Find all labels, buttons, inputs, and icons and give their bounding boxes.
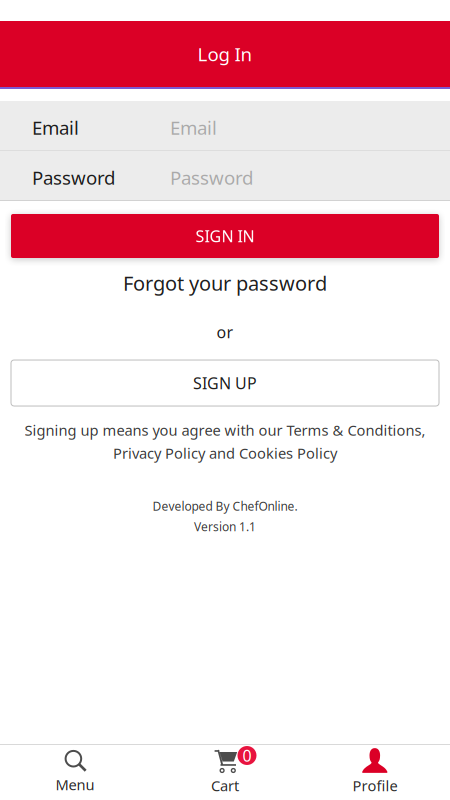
button[interactable]: 0 bbox=[150, 745, 300, 799]
staticText: 0 bbox=[242, 745, 251, 766]
staticText: Profile bbox=[352, 775, 397, 795]
staticText: Password bbox=[170, 165, 253, 190]
staticText: Log In bbox=[197, 41, 252, 67]
button[interactable]: SIGN IN bbox=[0, 214, 450, 258]
staticText: Menu bbox=[55, 774, 94, 794]
staticText: or bbox=[216, 321, 233, 343]
staticText: Version 1.1 bbox=[194, 518, 256, 535]
staticText: Signing up means you agree with our Term… bbox=[24, 420, 425, 440]
staticText: Cart bbox=[211, 775, 239, 795]
button[interactable]: Profile bbox=[300, 745, 450, 799]
staticText: Email bbox=[170, 115, 217, 140]
button[interactable]: Menu bbox=[0, 745, 150, 799]
staticText: Email bbox=[32, 115, 79, 140]
staticText: SIGN UP bbox=[193, 372, 257, 394]
staticText: Forgot your password bbox=[123, 269, 327, 297]
staticText: SIGN IN bbox=[195, 225, 254, 247]
staticText: Privacy Policy and Cookies Policy bbox=[113, 443, 337, 463]
button[interactable]: Forgot your password bbox=[0, 258, 450, 308]
button[interactable]: SIGN UP bbox=[0, 360, 450, 406]
staticText: Password bbox=[32, 165, 115, 190]
staticText: Developed By ChefOnline. bbox=[152, 498, 297, 514]
